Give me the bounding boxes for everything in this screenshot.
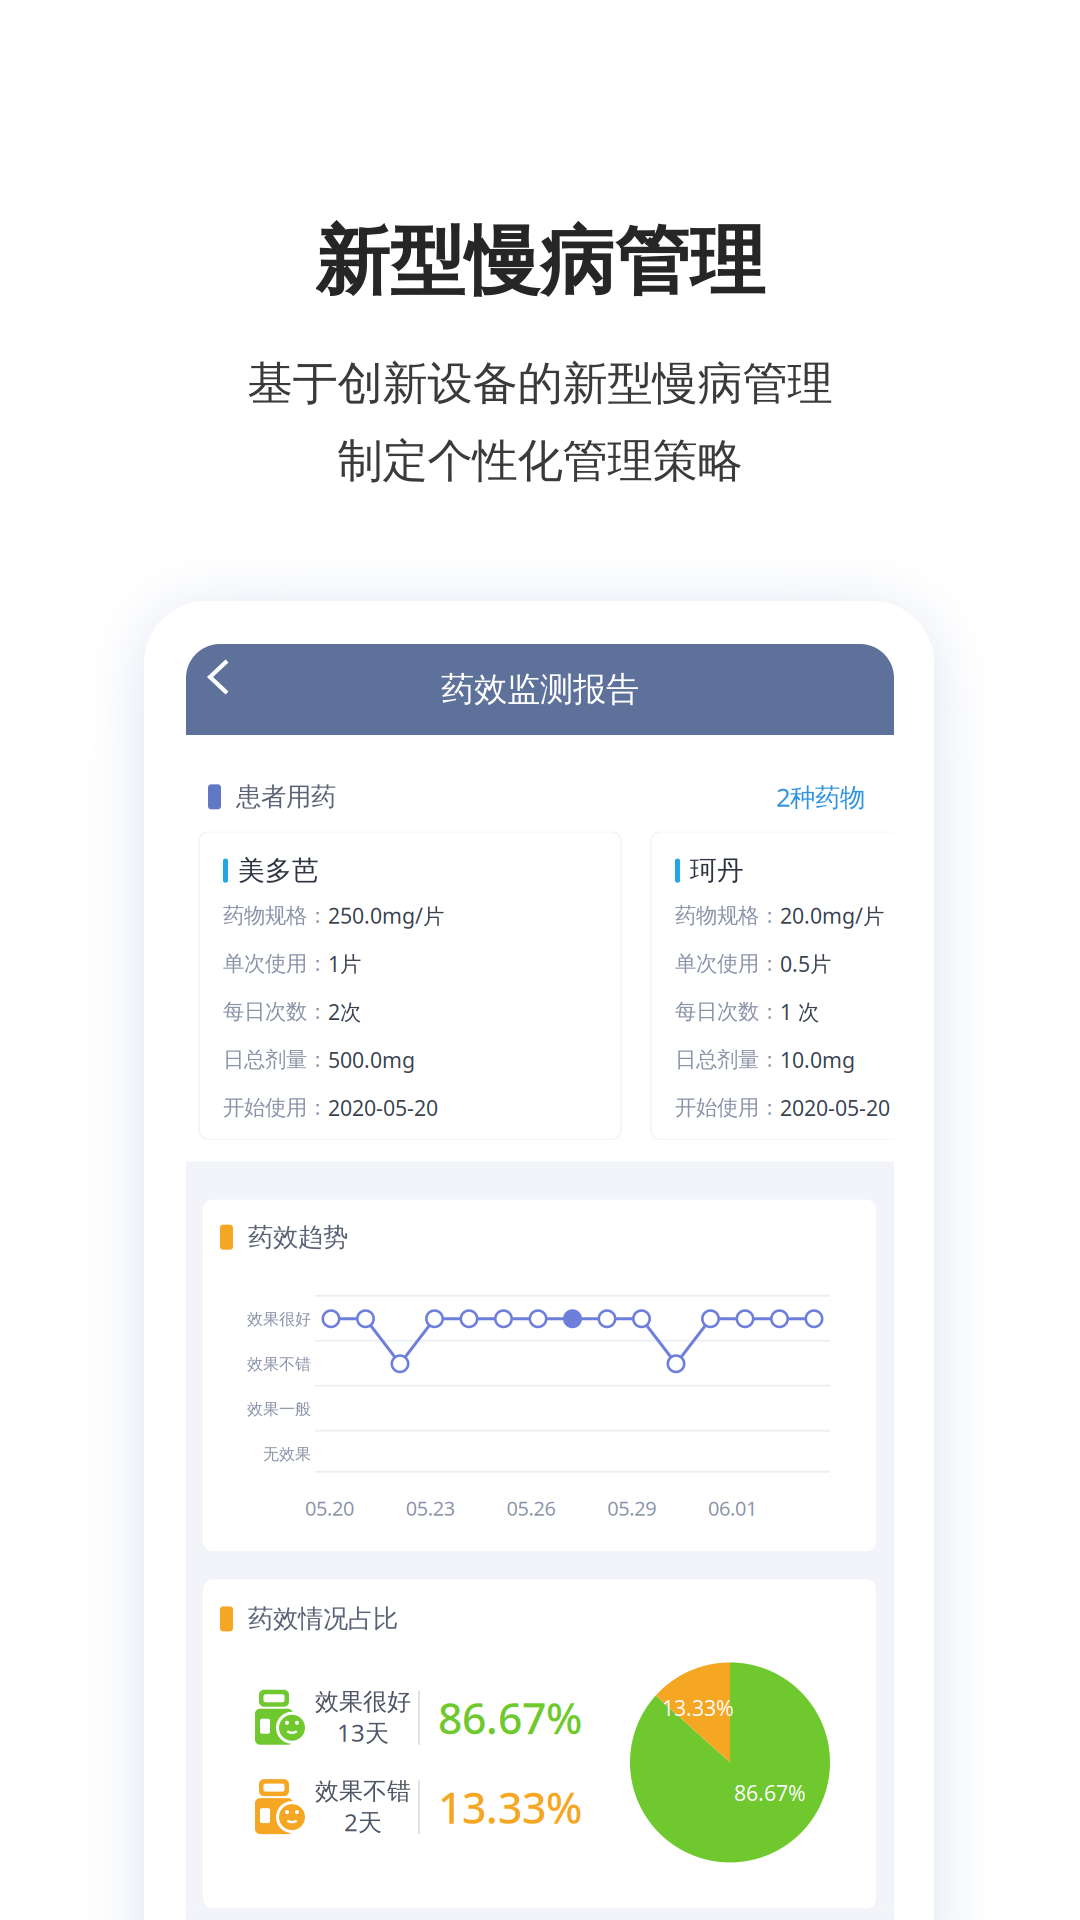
staticText: 2020-05-20 <box>328 1093 438 1122</box>
staticText: 药物规格： <box>223 902 328 929</box>
staticText: 250.0mg/片 <box>328 901 444 930</box>
staticText: 0.5片 <box>780 949 831 978</box>
staticText: 效果很好 <box>247 1309 311 1329</box>
staticText: 05.26 <box>506 1495 555 1521</box>
staticText: 单次使用： <box>223 950 328 977</box>
staticText: 药效监测报告 <box>441 669 639 710</box>
staticText: 2种药物 <box>776 780 865 814</box>
staticText: 开始使用： <box>223 1094 328 1121</box>
staticText: 药效情况占比 <box>248 1603 398 1634</box>
staticText: 1 次 <box>780 997 819 1026</box>
staticText: 2次 <box>328 997 361 1026</box>
staticText: 每日次数： <box>223 998 328 1025</box>
staticText: 05.29 <box>607 1495 656 1521</box>
staticText: 单次使用： <box>675 950 780 977</box>
staticText: 05.23 <box>406 1495 455 1521</box>
staticText: 基于创新设备的新型慢病管理 <box>247 356 832 411</box>
staticText: 10.0mg <box>780 1045 855 1074</box>
staticText: 制定个性化管理策略 <box>337 433 742 489</box>
staticText: 2020-05-20 <box>780 1093 890 1122</box>
staticText: 效果不错 <box>315 1776 411 1806</box>
staticText: 每日次数： <box>675 998 780 1025</box>
staticText: 06.01 <box>708 1495 757 1521</box>
staticText: 效果一般 <box>247 1399 311 1419</box>
staticText: 13.33% <box>438 1779 582 1835</box>
staticText: 患者用药 <box>236 781 336 812</box>
staticText: 1片 <box>328 949 361 978</box>
staticText: 效果不错 <box>247 1354 311 1374</box>
staticText: 开始使用： <box>675 1094 780 1121</box>
staticText: 2天 <box>344 1806 382 1838</box>
staticText: 效果很好 <box>315 1687 411 1717</box>
staticText: 新型慢病管理 <box>315 216 765 308</box>
staticText: 美多芭 <box>238 854 319 887</box>
staticText: 500.0mg <box>328 1045 415 1074</box>
staticText: 20.0mg/片 <box>780 901 884 930</box>
staticText: 药物规格： <box>675 902 780 929</box>
staticText: 13.33% <box>662 1693 734 1722</box>
staticText: 86.67% <box>438 1689 582 1746</box>
staticText: 珂丹 <box>690 854 744 887</box>
staticText: 药效趋势 <box>248 1222 348 1253</box>
staticText: 13天 <box>337 1717 389 1748</box>
staticText: 无效果 <box>263 1444 311 1464</box>
staticText: 05.20 <box>305 1495 354 1521</box>
staticText: 日总剂量： <box>675 1046 780 1073</box>
staticText: 日总剂量： <box>223 1046 328 1073</box>
button[interactable]: 返回 <box>186 644 247 714</box>
staticText: 86.67% <box>734 1778 806 1807</box>
